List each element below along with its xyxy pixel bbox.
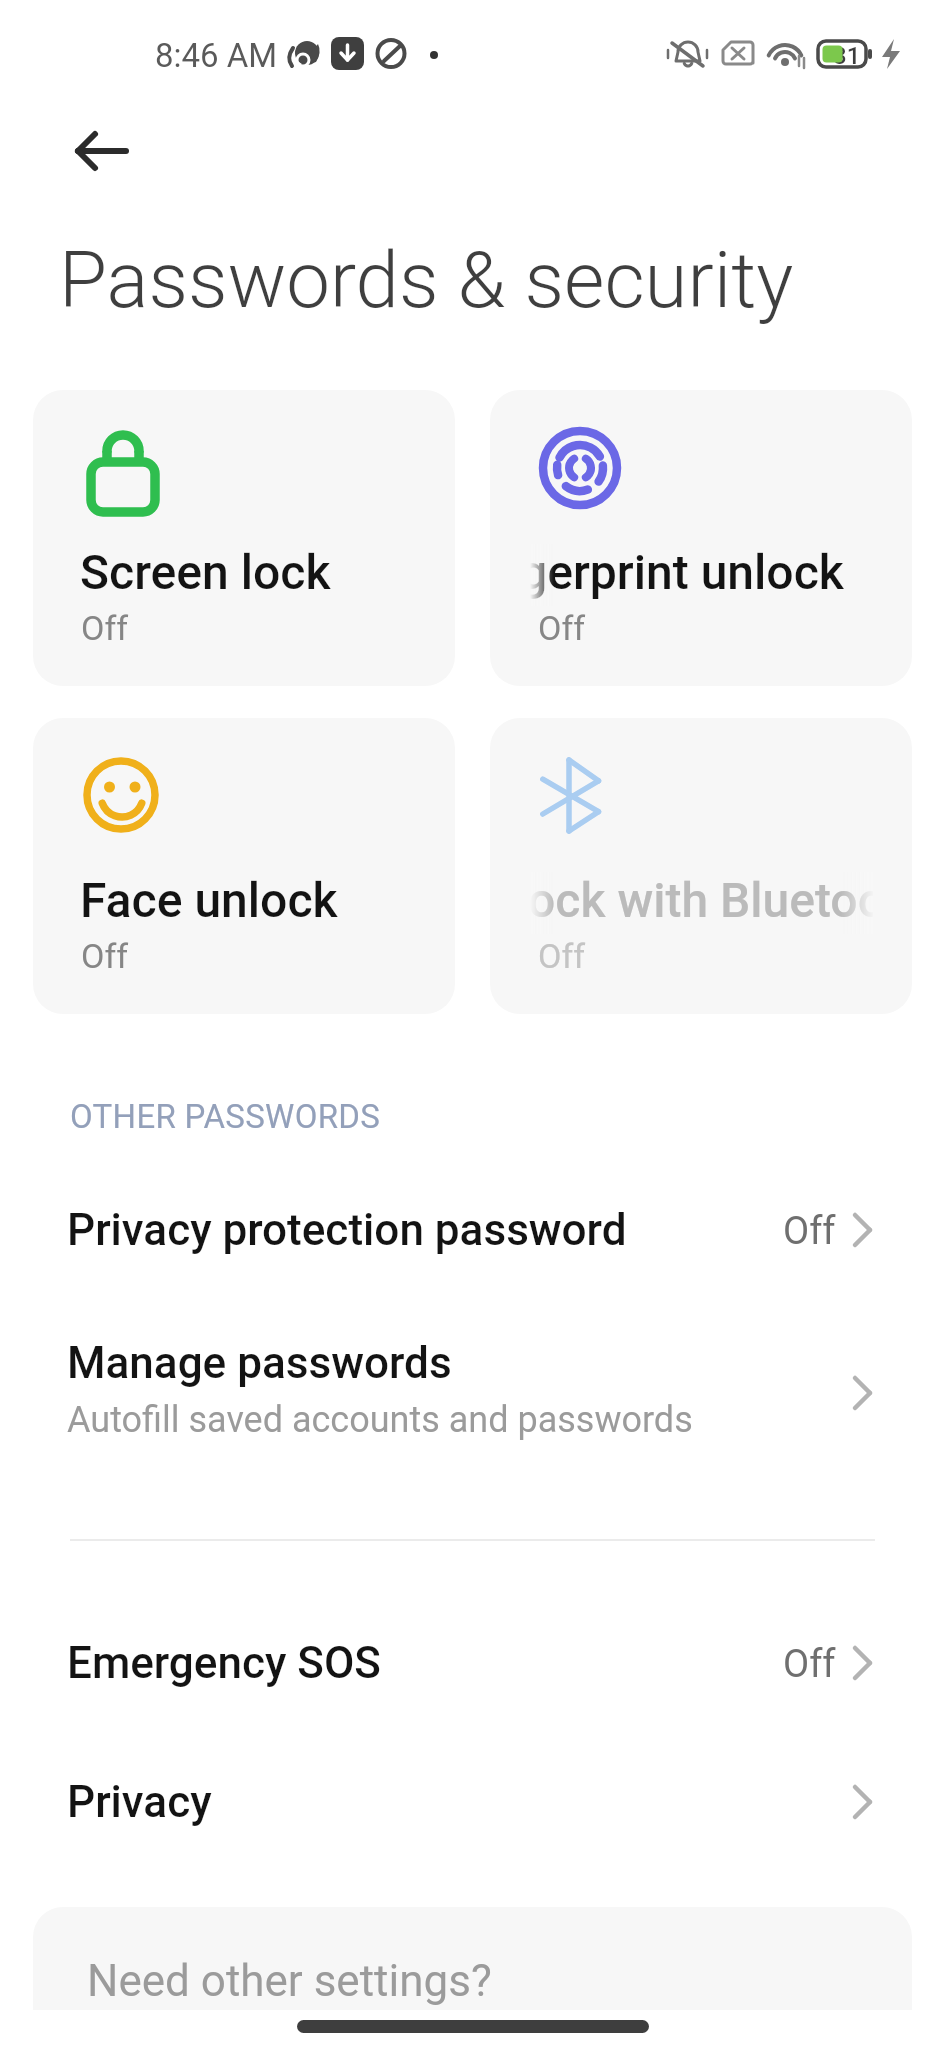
- staticText: Off: [783, 1209, 836, 1254]
- staticText: Privacy: [67, 1776, 212, 1828]
- button[interactable]: Manage passwords: [0, 1300, 945, 1486]
- button[interactable]: Face unlock: [33, 718, 455, 1014]
- staticText: Face unlock: [80, 872, 338, 928]
- staticText: Need other settings?: [87, 1955, 492, 2007]
- staticText: Emergency SOS: [67, 1637, 381, 1689]
- button[interactable]: Privacy: [0, 1727, 945, 1877]
- staticText: Autofill saved accounts and passwords: [67, 1399, 693, 1441]
- button[interactable]: [55, 105, 165, 195]
- button[interactable]: Privacy protection password: [0, 1155, 945, 1305]
- staticText: 8:46 AM: [155, 36, 278, 75]
- staticText: Privacy protection password: [67, 1204, 627, 1256]
- button[interactable]: gerprint unlock: [490, 390, 912, 686]
- button[interactable]: Need other settings?: [33, 1907, 912, 2010]
- staticText: Screen lock: [80, 544, 331, 600]
- staticText: Off: [538, 608, 586, 648]
- staticText: Passwords & security: [59, 235, 794, 326]
- staticText: gerprint unlock: [530, 544, 844, 600]
- staticText: ock with Bluetoot: [530, 872, 873, 928]
- button[interactable]: Emergency SOS: [0, 1588, 945, 1738]
- button[interactable]: Screen lock: [33, 390, 455, 686]
- staticText: Off: [81, 936, 129, 976]
- staticText: Off: [538, 936, 586, 976]
- staticText: 31: [833, 42, 861, 70]
- staticText: Manage passwords: [67, 1337, 452, 1389]
- staticText: Off: [783, 1642, 836, 1687]
- staticText: Off: [81, 608, 129, 648]
- staticText: OTHER PASSWORDS: [70, 1097, 381, 1136]
- button[interactable]: ock with Bluetoot: [490, 718, 912, 1014]
